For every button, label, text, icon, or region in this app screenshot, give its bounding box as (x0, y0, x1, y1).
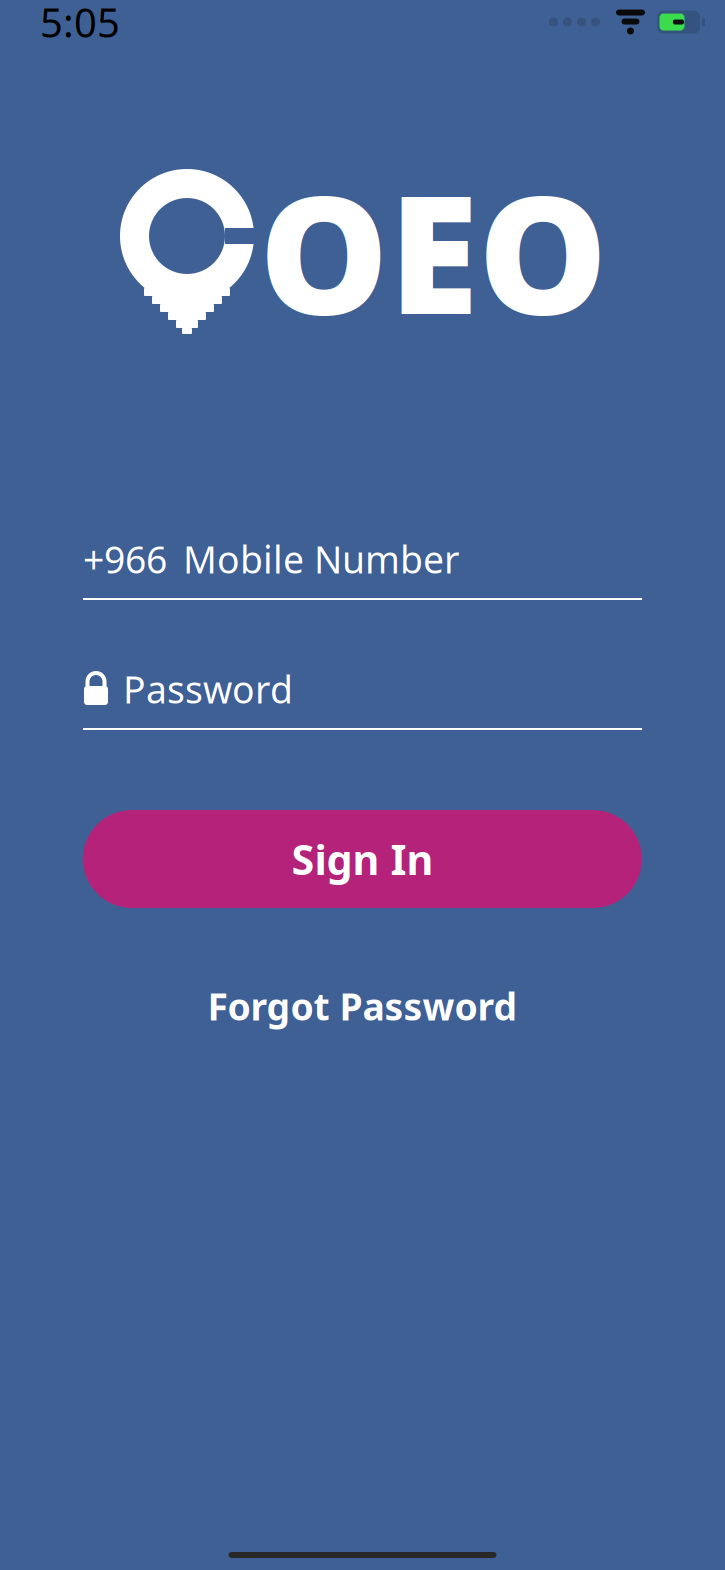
button[interactable]: Password (83, 666, 642, 730)
button[interactable]: Forgot Password (83, 984, 642, 1028)
staticText: Mobile Number (183, 534, 459, 584)
staticText: +966 (83, 534, 167, 584)
staticText: OEO (259, 143, 608, 359)
staticText: Password (123, 664, 293, 714)
staticText: Sign In (291, 832, 433, 886)
staticText: 5:05 (40, 0, 120, 48)
button[interactable]: +966 (83, 536, 642, 600)
button[interactable]: Sign In (83, 810, 642, 908)
staticText: Forgot Password (207, 981, 517, 1031)
